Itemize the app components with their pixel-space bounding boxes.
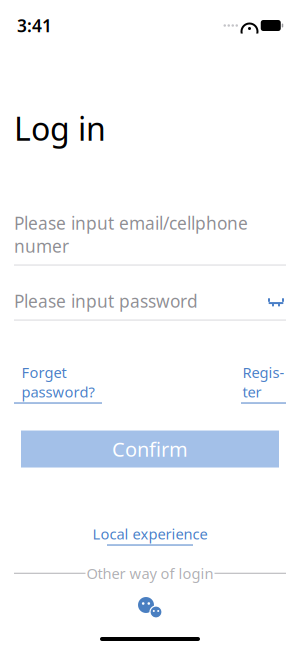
button[interactable]: Confirm (21, 430, 279, 467)
staticText: Confirm (112, 436, 188, 462)
staticText: Register (242, 363, 284, 402)
staticText: 3:41 (17, 14, 52, 37)
staticText: Local experience (92, 524, 207, 543)
button[interactable]: Local experience (92, 524, 207, 545)
button[interactable]: Forget password? (14, 363, 102, 404)
staticText: Other way of login (86, 563, 213, 583)
staticText: Log in (14, 107, 106, 149)
staticText: Forget password? (21, 363, 94, 402)
button[interactable]: Show password (266, 294, 286, 308)
staticText: Please input email/cellphone numer (14, 211, 248, 257)
button[interactable]: Register (241, 363, 286, 404)
staticText: Please input password (14, 289, 198, 312)
button[interactable]: Sign in with WeChat (137, 597, 163, 619)
